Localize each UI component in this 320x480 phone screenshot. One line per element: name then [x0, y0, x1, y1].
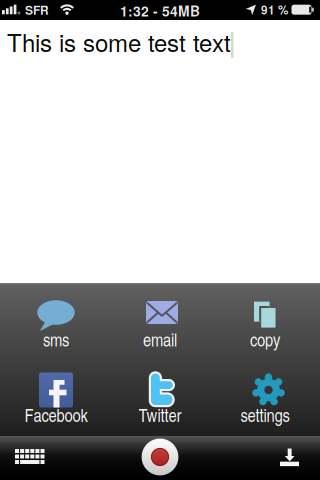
button[interactable]: Twitter — [107, 365, 213, 429]
button[interactable]: Facebook — [3, 365, 109, 429]
staticText: sms — [43, 327, 69, 352]
staticText: This is some test text — [7, 24, 231, 59]
staticText: copy — [250, 327, 280, 352]
staticText: 91 % — [261, 1, 288, 18]
button[interactable]: copy — [212, 290, 318, 354]
staticText: email — [143, 327, 177, 352]
staticText: Facebook — [24, 402, 87, 427]
staticText: 1:32 - 54MB — [120, 1, 200, 21]
button[interactable]: Keyboard — [0, 436, 60, 480]
staticText: SFR — [25, 1, 49, 18]
staticText: settings — [240, 402, 289, 427]
button[interactable]: email — [107, 290, 213, 354]
staticText: Twitter — [138, 402, 181, 427]
button[interactable]: Record — [141, 438, 179, 476]
button[interactable]: settings — [212, 365, 318, 429]
button[interactable]: Save — [260, 436, 320, 480]
button[interactable]: sms — [3, 290, 109, 354]
